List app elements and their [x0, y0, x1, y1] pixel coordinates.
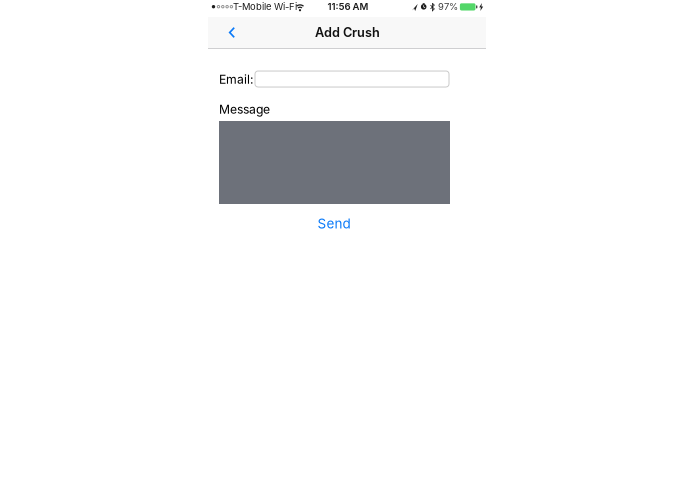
staticText: Message	[219, 102, 270, 117]
button[interactable]: Email text field	[254, 70, 449, 87]
staticText: 97%	[438, 1, 458, 12]
staticText: Send	[317, 215, 350, 232]
button[interactable]: Back	[224, 22, 240, 42]
staticText: T-Mobile Wi-Fi	[233, 1, 297, 12]
staticText: Add Crush	[315, 25, 380, 40]
staticText: 11:56 AM	[327, 1, 368, 12]
staticText: Email:	[219, 72, 254, 87]
button[interactable]: Send	[317, 215, 350, 232]
